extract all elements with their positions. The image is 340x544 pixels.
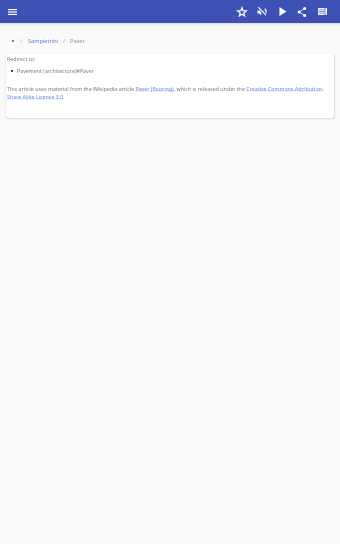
staticText: This article uses material from the Wiki… [7, 85, 324, 92]
staticText: Paver [70, 37, 85, 45]
staticText: Share Alike License 3.0. [7, 93, 65, 100]
button[interactable]: Navigation menu [1, 1, 23, 23]
staticText: / [20, 37, 23, 45]
button[interactable]: Sampietrini [28, 37, 59, 45]
button[interactable]: Mute [252, 0, 272, 23]
staticText: Sampietrini [28, 37, 59, 45]
staticText: Pavement (architecture)#Paver [17, 67, 94, 74]
staticText: Redirect to: [7, 55, 36, 62]
button[interactable]: Share [292, 0, 312, 23]
button[interactable]: Home [0, 36, 20, 46]
button[interactable]: Play [272, 0, 292, 23]
staticText: / [63, 37, 66, 45]
button[interactable]: Reader mode [312, 0, 332, 23]
button[interactable]: Add to favourites [232, 0, 252, 23]
